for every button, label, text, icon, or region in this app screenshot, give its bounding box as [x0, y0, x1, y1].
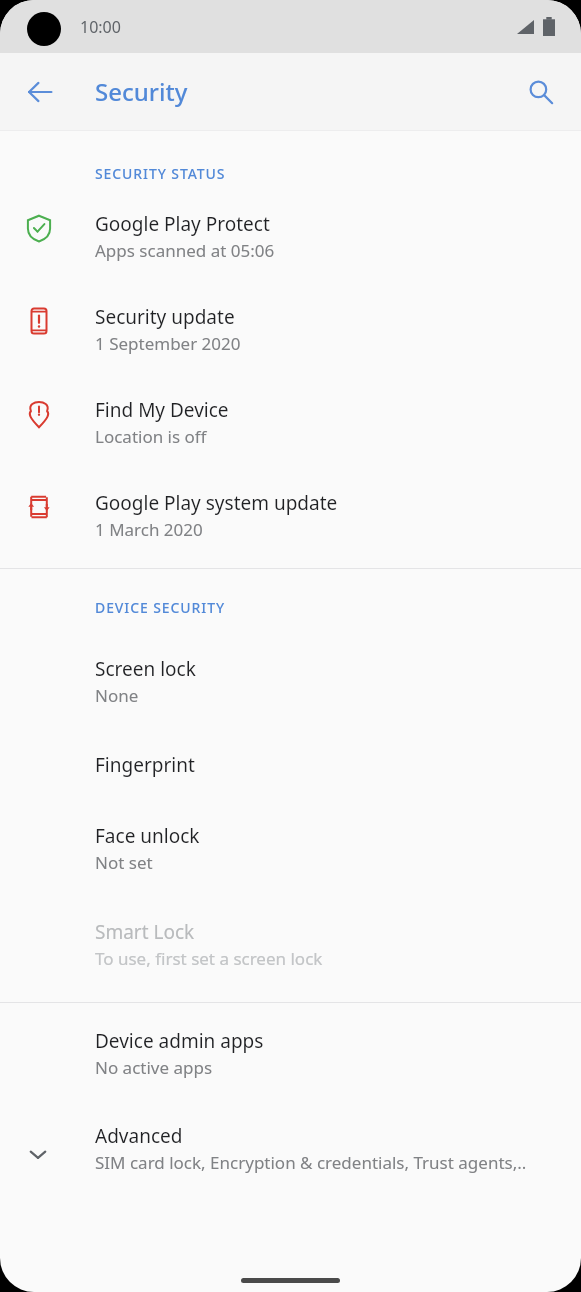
- button[interactable]: Smart Lock: [0, 874, 581, 970]
- staticText: Security update: [95, 304, 235, 330]
- button[interactable]: Google Play system update: [0, 448, 581, 541]
- staticText: Device admin apps: [95, 1028, 264, 1054]
- button[interactable]: Google Play Protect: [0, 183, 581, 262]
- staticText: Smart Lock: [95, 919, 195, 945]
- staticText: Face unlock: [95, 823, 200, 849]
- staticText: Fingerprint: [95, 752, 195, 778]
- button[interactable]: Find My Device: [0, 355, 581, 448]
- staticText: No active apps: [95, 1056, 213, 1079]
- staticText: Screen lock: [95, 656, 196, 682]
- button[interactable]: Device admin apps: [0, 1003, 581, 1079]
- staticText: None: [95, 684, 139, 707]
- button[interactable]: Fingerprint: [0, 707, 581, 778]
- staticText: SECURITY STATUS: [95, 164, 226, 183]
- staticText: DEVICE SECURITY: [95, 598, 225, 617]
- staticText: Security: [95, 75, 188, 108]
- staticText: 1 September 2020: [95, 332, 241, 355]
- staticText: SIM card lock, Encryption & credentials,…: [95, 1151, 527, 1174]
- staticText: 1 March 2020: [95, 518, 203, 541]
- button[interactable]: Security update: [0, 262, 581, 355]
- staticText: Google Play Protect: [95, 211, 270, 237]
- button[interactable]: Advanced: [0, 1079, 581, 1174]
- staticText: Location is off: [95, 425, 207, 448]
- staticText: 10:00: [80, 16, 121, 38]
- button[interactable]: Screen lock: [0, 617, 581, 707]
- staticText: To use, first set a screen lock: [95, 947, 323, 970]
- staticText: Not set: [95, 851, 153, 874]
- staticText: Google Play system update: [95, 490, 338, 516]
- staticText: Advanced: [95, 1123, 183, 1149]
- button[interactable]: Search: [513, 64, 569, 120]
- staticText: Find My Device: [95, 397, 229, 423]
- staticText: Apps scanned at 05:06: [95, 239, 275, 262]
- button[interactable]: Back: [12, 64, 68, 120]
- button[interactable]: Face unlock: [0, 778, 581, 874]
